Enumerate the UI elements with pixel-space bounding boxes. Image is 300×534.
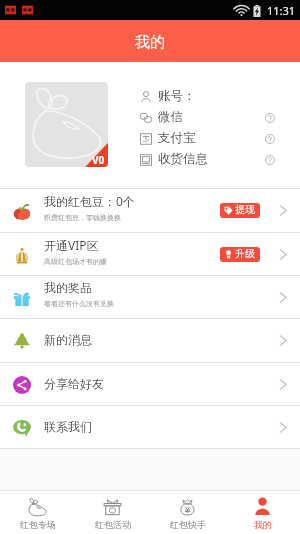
staticText: 我的红包豆：0个	[44, 193, 135, 209]
staticText: 我的奖品	[44, 280, 92, 295]
button[interactable]: 红包快手	[150, 491, 225, 534]
button[interactable]: 我的	[225, 491, 300, 534]
staticText: 看看还有什么没有兑换	[44, 299, 114, 308]
staticText: 积攒红包豆，零钱换换换	[44, 213, 121, 222]
staticText: 高级红包场才有的赚	[44, 257, 107, 266]
button[interactable]: Help	[265, 155, 275, 165]
button[interactable]: 新的消息	[0, 319, 300, 362]
button[interactable]: 我的红包豆：0个	[0, 189, 300, 232]
button[interactable]: 开通VIP区	[0, 233, 300, 275]
button[interactable]: 微信	[140, 107, 275, 128]
button[interactable]: 收货信息	[140, 149, 275, 170]
button[interactable]: 我的奖品	[0, 276, 300, 318]
button[interactable]: 支付宝	[140, 128, 275, 149]
staticText: 微信	[158, 109, 183, 125]
staticText: 分享给好友	[44, 376, 104, 391]
staticText: 红包活动	[95, 519, 131, 530]
staticText: V0	[92, 153, 105, 167]
staticText: 开通VIP区	[44, 237, 99, 253]
staticText: 升级	[235, 247, 255, 260]
staticText: 提现	[235, 203, 255, 216]
staticText: 账号：	[158, 88, 196, 104]
button[interactable]: 账号：	[140, 86, 275, 107]
staticText: 收货信息	[158, 151, 208, 167]
button[interactable]: Help	[265, 113, 275, 123]
button[interactable]: 提现	[220, 203, 260, 218]
button[interactable]: 红包活动	[75, 491, 150, 534]
staticText: 红包专场	[20, 519, 56, 530]
staticText: 联系我们	[44, 419, 92, 434]
staticText: 红包快手	[170, 519, 206, 530]
staticText: 我的	[135, 33, 165, 52]
button[interactable]: 联系我们	[0, 406, 300, 448]
staticText: 新的消息	[44, 332, 92, 347]
button[interactable]: Help	[265, 134, 275, 144]
staticText: 我的	[254, 519, 272, 530]
button[interactable]: 红包专场	[0, 491, 75, 534]
staticText: 11:31	[267, 3, 296, 18]
button[interactable]: 升级	[220, 247, 260, 262]
button[interactable]: Avatar	[25, 82, 108, 167]
button[interactable]: 分享给好友	[0, 363, 300, 405]
staticText: 支付宝	[158, 130, 196, 146]
